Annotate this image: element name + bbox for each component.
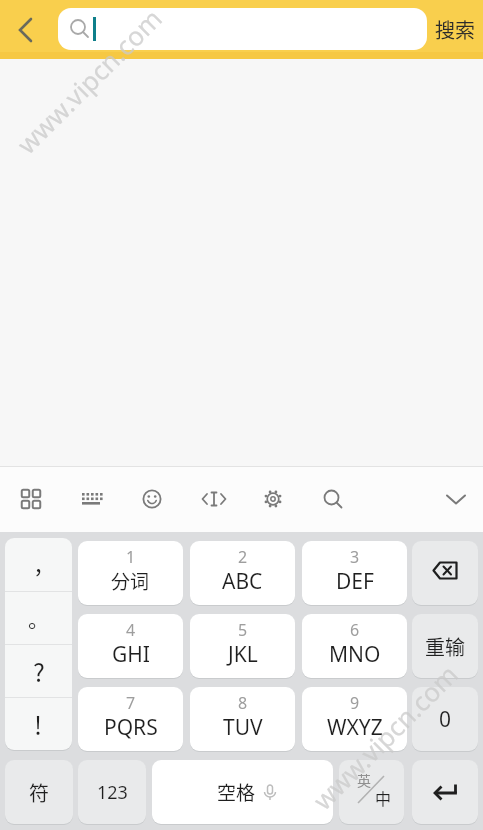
button[interactable]: 7	[78, 687, 183, 751]
button[interactable]	[58, 8, 427, 50]
button[interactable]	[412, 760, 478, 824]
button[interactable]: ?	[5, 645, 72, 697]
staticText: TUV	[223, 713, 263, 742]
button[interactable]: !	[5, 698, 72, 750]
staticText: ABC	[222, 567, 263, 596]
staticText: PQRS	[104, 713, 158, 742]
button[interactable]: 。	[5, 592, 72, 644]
button[interactable]: 2	[190, 541, 295, 605]
staticText: MNO	[329, 640, 381, 669]
staticText: 0	[439, 705, 452, 734]
button[interactable]: 123	[78, 760, 146, 824]
button[interactable]	[412, 541, 478, 605]
button[interactable]: 1	[78, 541, 183, 605]
staticText: 搜索	[435, 15, 475, 44]
staticText: ,	[35, 544, 42, 579]
button[interactable]: 8	[190, 687, 295, 751]
staticText: 4	[126, 619, 136, 641]
staticText: WXYZ	[327, 713, 383, 742]
staticText: ?	[33, 653, 45, 689]
staticText: DEF	[336, 567, 374, 596]
staticText: 1	[126, 546, 136, 568]
staticText: 中	[375, 786, 392, 809]
button[interactable]	[315, 481, 351, 517]
staticText: 5	[238, 619, 248, 641]
staticText: 空格	[217, 778, 256, 806]
button[interactable]: 搜索	[427, 0, 483, 59]
button[interactable]	[73, 481, 109, 517]
button[interactable]	[13, 481, 49, 517]
staticText: 9	[350, 692, 360, 714]
staticText: 分词	[111, 567, 150, 595]
button[interactable]: 符	[5, 760, 73, 824]
button[interactable]: 重输	[412, 614, 478, 678]
button[interactable]: 6	[302, 614, 407, 678]
button[interactable]	[8, 12, 44, 48]
button[interactable]: 英	[339, 760, 404, 824]
staticText: !	[34, 706, 43, 742]
staticText: 。	[28, 603, 49, 633]
staticText: 7	[126, 692, 136, 714]
button[interactable]	[438, 481, 474, 517]
staticText: 123	[97, 780, 128, 805]
staticText: 6	[350, 619, 360, 641]
button[interactable]	[134, 481, 170, 517]
staticText: www.vipcn.com	[305, 656, 465, 817]
button[interactable]: 4	[78, 614, 183, 678]
staticText: www.vipcn.com	[9, 0, 169, 161]
staticText: 重输	[425, 632, 465, 661]
button[interactable]	[255, 481, 291, 517]
button[interactable]: 3	[302, 541, 407, 605]
button[interactable]: 9	[302, 687, 407, 751]
staticText: 3	[350, 546, 360, 568]
button[interactable]: 5	[190, 614, 295, 678]
button[interactable]: 空格	[152, 760, 333, 824]
button[interactable]: 0	[412, 687, 478, 751]
staticText: GHI	[112, 640, 150, 669]
staticText: JKL	[228, 640, 258, 669]
staticText: 英	[357, 770, 371, 790]
staticText: 2	[238, 546, 248, 568]
staticText: 符	[29, 778, 49, 807]
button[interactable]	[196, 481, 232, 517]
staticText: 8	[238, 692, 248, 714]
button[interactable]: ,	[5, 538, 72, 591]
